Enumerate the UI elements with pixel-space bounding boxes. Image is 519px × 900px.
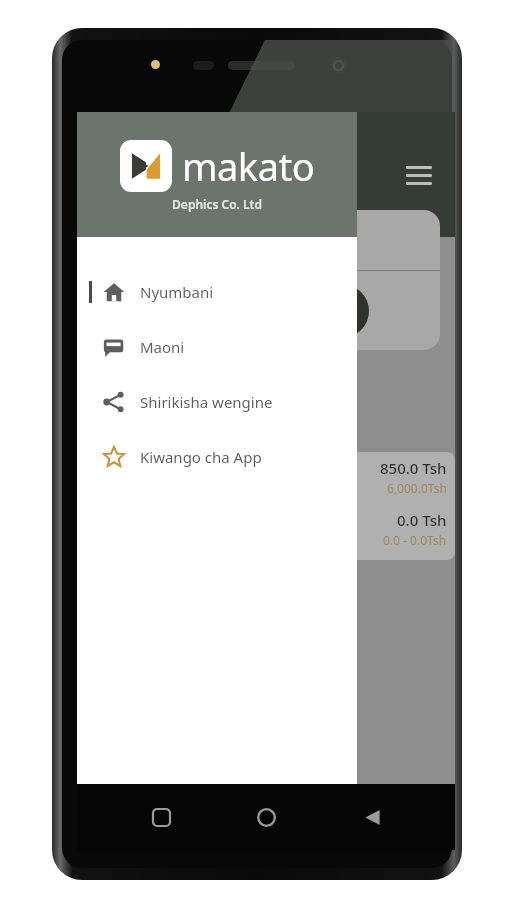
staticText: 0.0 - 0.0Tsh bbox=[383, 532, 447, 548]
button[interactable]: Shirikisha wengine bbox=[77, 374, 357, 429]
button[interactable]: Home bbox=[244, 795, 288, 839]
staticText: Shirikisha wengine bbox=[140, 392, 273, 412]
button[interactable] bbox=[305, 210, 440, 350]
staticText: Dephics Co. Ltd bbox=[172, 196, 262, 212]
staticText: makato bbox=[182, 140, 315, 192]
button[interactable]: Maoni bbox=[77, 319, 357, 374]
staticText: 0.0 Tsh bbox=[397, 510, 447, 530]
button[interactable]: Recent apps bbox=[139, 795, 183, 839]
staticText: Kiwango cha App bbox=[140, 447, 262, 467]
staticText: Maoni bbox=[140, 337, 185, 357]
button[interactable]: Open navigation menu bbox=[397, 153, 441, 197]
button[interactable]: Back bbox=[350, 795, 394, 839]
button[interactable]: Nyumbani bbox=[77, 264, 357, 319]
button[interactable]: Kiwango cha App bbox=[77, 429, 357, 484]
staticText: Nyumbani bbox=[140, 282, 214, 302]
staticText: 6,000.0Tsh bbox=[387, 480, 447, 496]
staticText: 850.0 Tsh bbox=[380, 458, 447, 478]
